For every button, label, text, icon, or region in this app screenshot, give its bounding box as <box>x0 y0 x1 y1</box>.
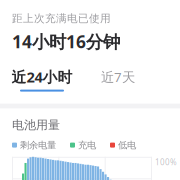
staticText: 低电 <box>118 139 136 151</box>
staticText: 近7天 <box>101 68 135 86</box>
staticText: 电池用量 <box>12 118 60 132</box>
staticText: 14小时16分钟 <box>12 30 120 53</box>
staticText: 充电 <box>78 139 96 151</box>
button[interactable]: 近24小时 <box>4 67 80 92</box>
button[interactable]: 近7天 <box>80 68 156 91</box>
staticText: 近24小时 <box>11 67 72 87</box>
staticText: 距上次充满电已使用 <box>12 12 111 25</box>
staticText: 剩余电量 <box>20 139 56 151</box>
staticText: 100% <box>155 157 177 167</box>
